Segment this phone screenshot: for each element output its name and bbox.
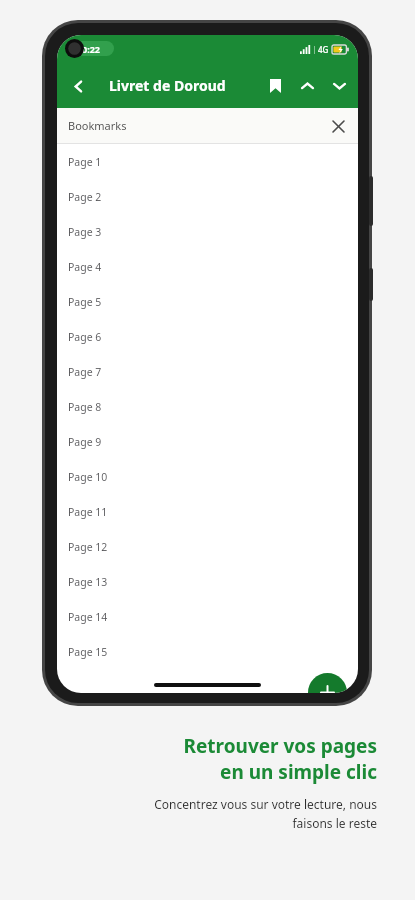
staticText: Page 12: [68, 540, 108, 554]
staticText: Page 9: [68, 435, 102, 449]
button[interactable]: Page 14: [57, 599, 358, 634]
staticText: Page 10: [68, 470, 108, 484]
button[interactable]: Page 4: [57, 249, 358, 284]
staticText: Livret de Doroud: [109, 76, 226, 95]
staticText: Concentrez vous sur votre lecture, nous …: [36, 796, 377, 831]
button[interactable]: Page 2: [57, 179, 358, 214]
button[interactable]: Page 11: [57, 494, 358, 529]
staticText: Page 14: [68, 610, 108, 624]
staticText: 0:22: [82, 43, 100, 55]
staticText: Page 7: [68, 365, 102, 379]
staticText: Page 8: [68, 400, 102, 414]
button[interactable]: Close bookmarks: [325, 113, 351, 139]
button[interactable]: Page 7: [57, 354, 358, 389]
staticText: Page 5: [68, 295, 102, 309]
button[interactable]: Page 6: [57, 319, 358, 354]
button[interactable]: Page 15: [57, 634, 358, 669]
button[interactable]: Page 9: [57, 424, 358, 459]
button[interactable]: Add bookmark: [308, 673, 347, 693]
staticText: Page 4: [68, 260, 102, 274]
button[interactable]: Page 12: [57, 529, 358, 564]
staticText: Retrouver vos pages en un simple clic: [36, 733, 377, 784]
button[interactable]: Page 8: [57, 389, 358, 424]
staticText: 4G: [318, 44, 329, 55]
staticText: Bookmarks: [68, 118, 127, 133]
staticText: Page 3: [68, 225, 102, 239]
staticText: Page 2: [68, 190, 102, 204]
button[interactable]: Next bookmark: [323, 70, 355, 102]
staticText: Page 11: [68, 505, 108, 519]
button[interactable]: Bookmarks: [259, 70, 291, 102]
staticText: Page 15: [68, 645, 108, 659]
staticText: Page 13: [68, 575, 108, 589]
button[interactable]: Page 1: [57, 144, 358, 179]
button[interactable]: Page 13: [57, 564, 358, 599]
staticText: Page 1: [68, 155, 102, 169]
button[interactable]: Page 10: [57, 459, 358, 494]
button[interactable]: Page 5: [57, 284, 358, 319]
staticText: Page 6: [68, 330, 102, 344]
button[interactable]: Page 3: [57, 214, 358, 249]
button[interactable]: Previous bookmark: [291, 70, 323, 102]
button[interactable]: Back: [61, 69, 95, 103]
